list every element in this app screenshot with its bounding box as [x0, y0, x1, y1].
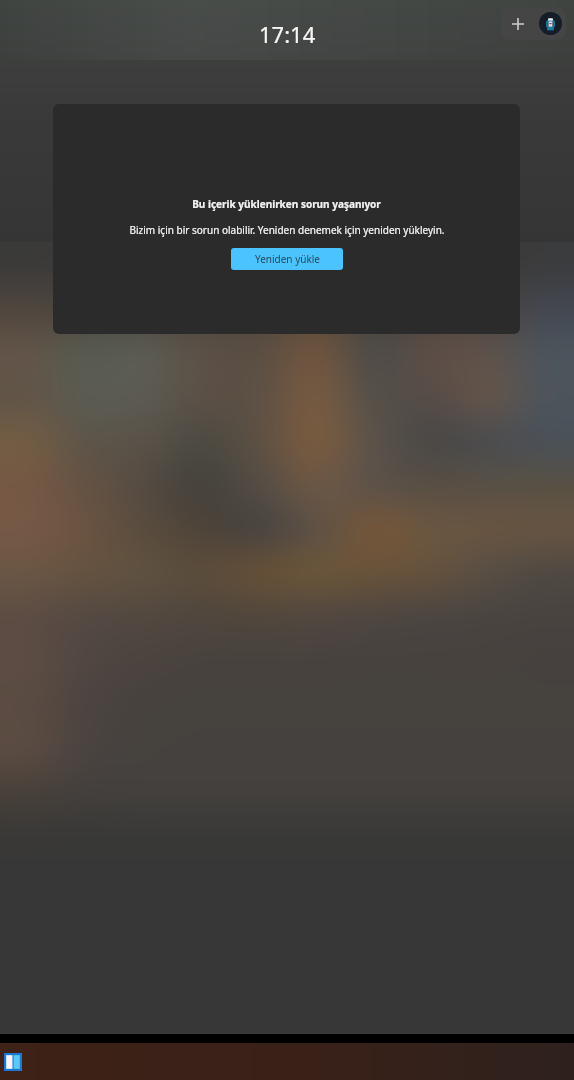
- button[interactable]: New tab: [501, 7, 534, 40]
- staticText: Bizim için bir sorun olabilir. Yeniden d…: [129, 223, 445, 237]
- button[interactable]: Apps: [4, 1053, 22, 1071]
- staticText: Bu içerik yüklenirken sorun yaşanıyor: [192, 197, 381, 211]
- staticText: 17:14: [259, 19, 316, 49]
- button[interactable]: Profile: [534, 7, 566, 40]
- staticText: Yeniden yükle: [255, 252, 320, 266]
- button[interactable]: Yeniden yükle: [231, 248, 343, 270]
